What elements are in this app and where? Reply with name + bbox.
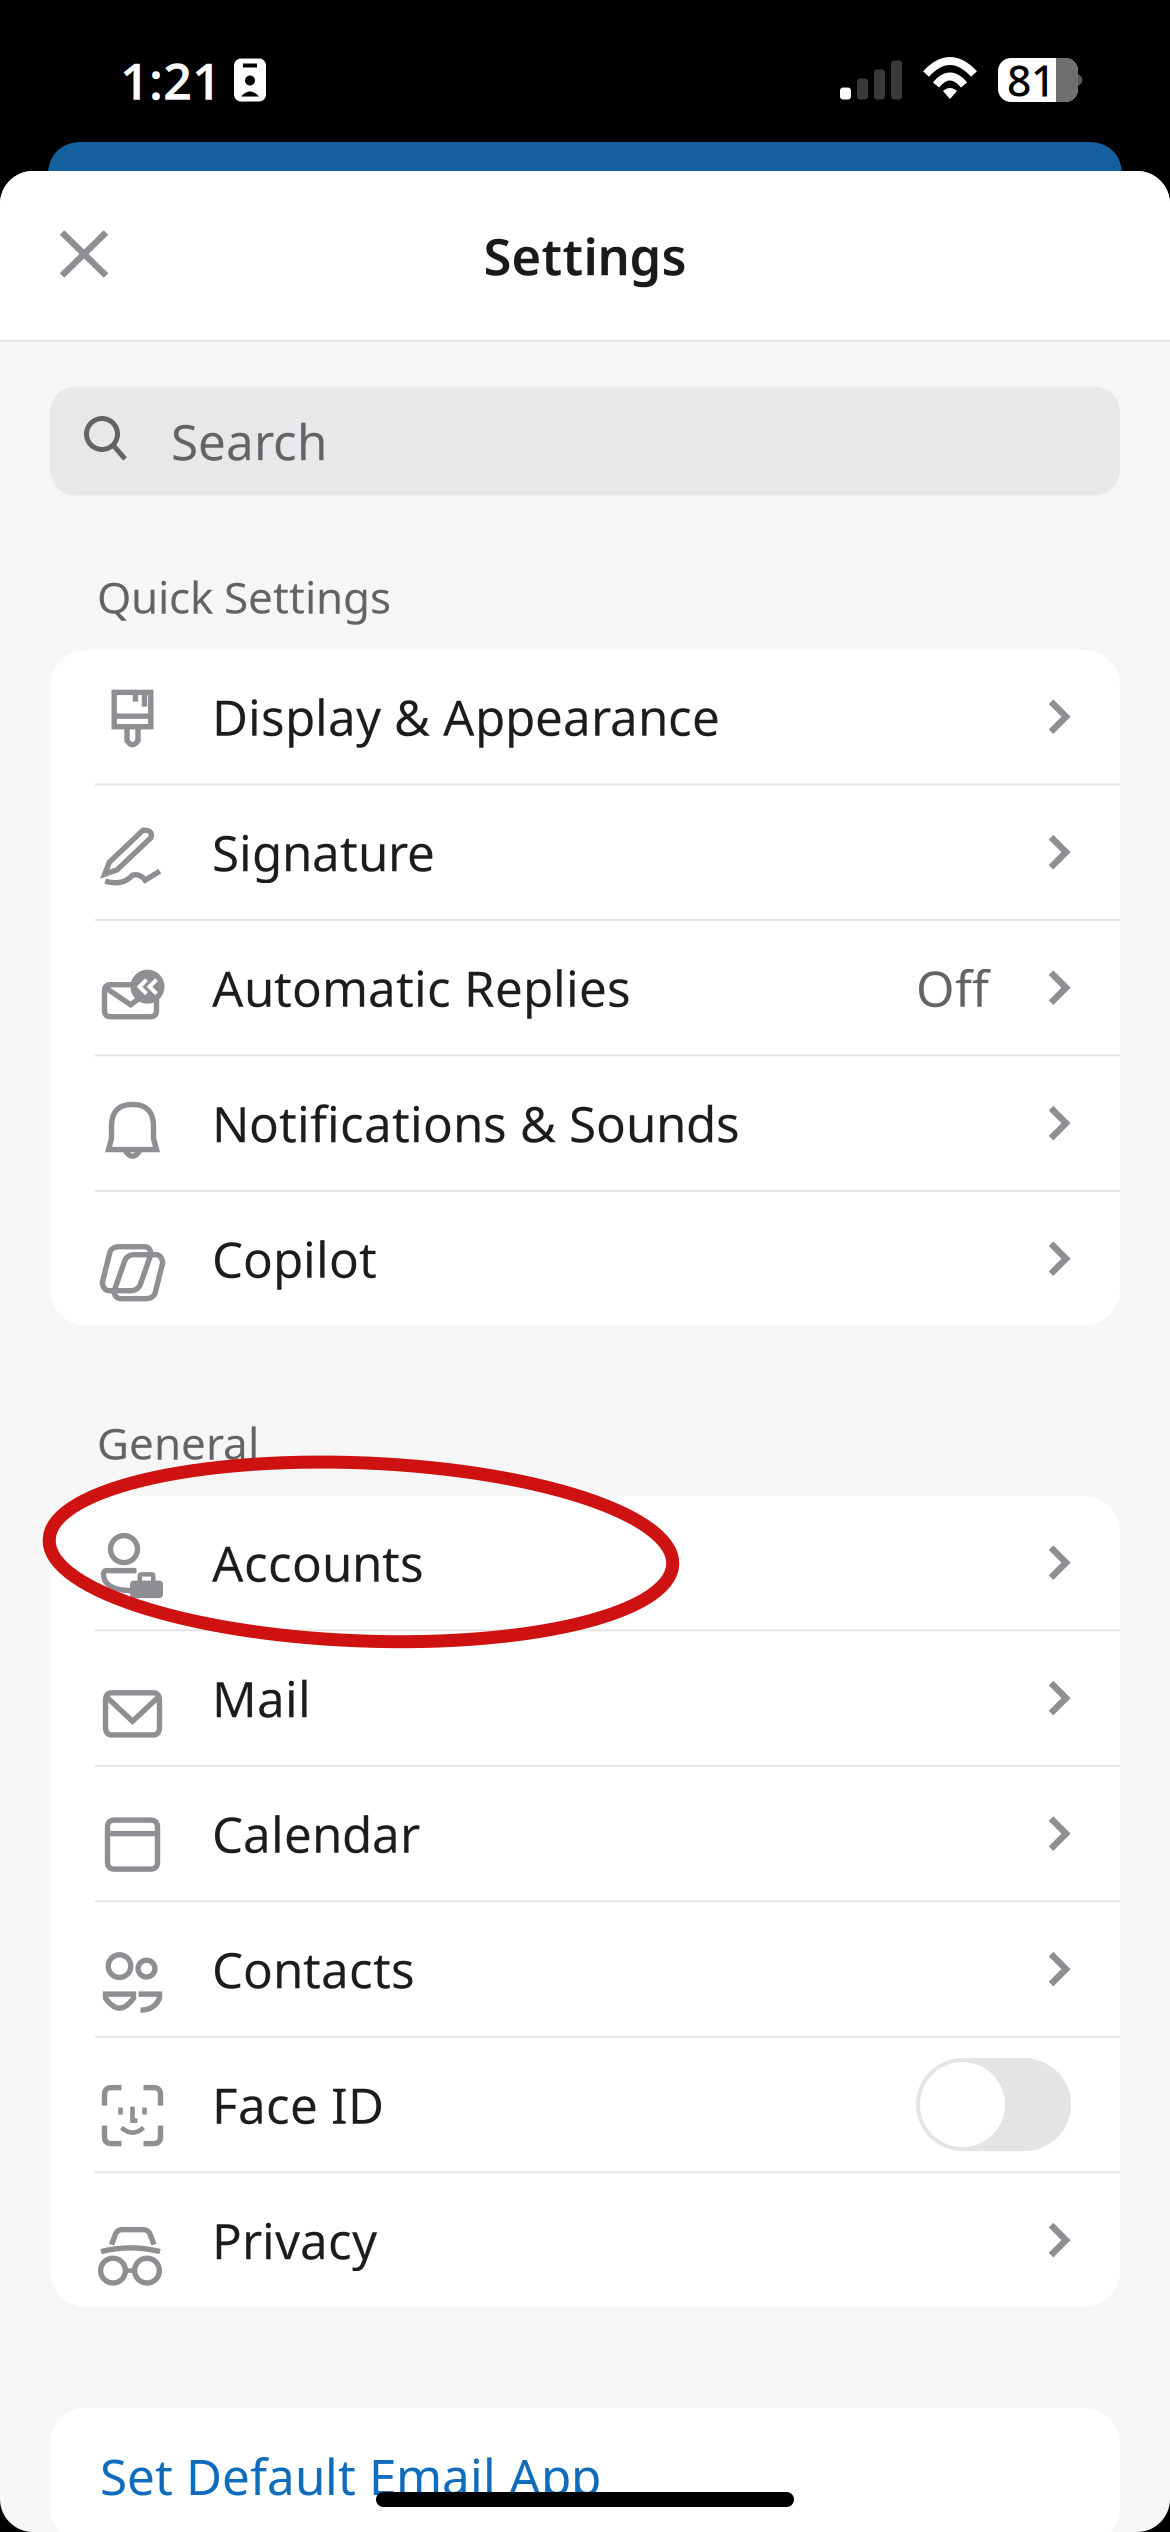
staticText: Face ID — [212, 2072, 384, 2137]
button[interactable]: Copilot — [50, 1192, 1120, 1325]
staticText: Calendar — [212, 1801, 420, 1866]
staticText: Display & Appearance — [212, 684, 720, 749]
staticText: Privacy — [212, 2207, 377, 2273]
button[interactable]: Set Default Email App — [0, 2307, 1170, 2532]
button[interactable]: Contacts — [50, 1902, 1120, 2036]
button[interactable]: Display & Appearance — [50, 650, 1120, 783]
button[interactable]: Close — [31, 202, 137, 308]
staticText: Set Default Email App — [100, 2443, 601, 2509]
staticText: 1:21 — [120, 46, 221, 114]
button[interactable]: Face ID — [50, 2038, 1120, 2171]
staticText: 81 — [1007, 52, 1055, 108]
staticText: Signature — [212, 819, 435, 885]
staticText: Notifications & Sounds — [212, 1090, 740, 1156]
button[interactable]: Calendar — [50, 1767, 1120, 1900]
staticText: General — [97, 1413, 259, 1472]
button[interactable]: Notifications & Sounds — [50, 1056, 1120, 1190]
staticText: Copilot — [212, 1226, 377, 1291]
button[interactable]: Accounts — [50, 1496, 1120, 1629]
button[interactable]: Privacy — [50, 2173, 1120, 2307]
button[interactable]: Search — [0, 341, 1170, 495]
button[interactable]: Automatic Replies — [50, 921, 1120, 1054]
staticText: Accounts — [212, 1530, 424, 1595]
button[interactable]: Mail — [50, 1631, 1120, 1765]
staticText: Settings — [483, 222, 686, 289]
button[interactable]: Signature — [50, 785, 1120, 919]
staticText: Off — [916, 955, 989, 1020]
staticText: Mail — [212, 1665, 311, 1731]
staticText: Search — [171, 408, 327, 474]
staticText: Contacts — [212, 1936, 415, 2002]
staticText: Quick Settings — [97, 567, 391, 626]
staticText: Automatic Replies — [212, 955, 631, 1020]
